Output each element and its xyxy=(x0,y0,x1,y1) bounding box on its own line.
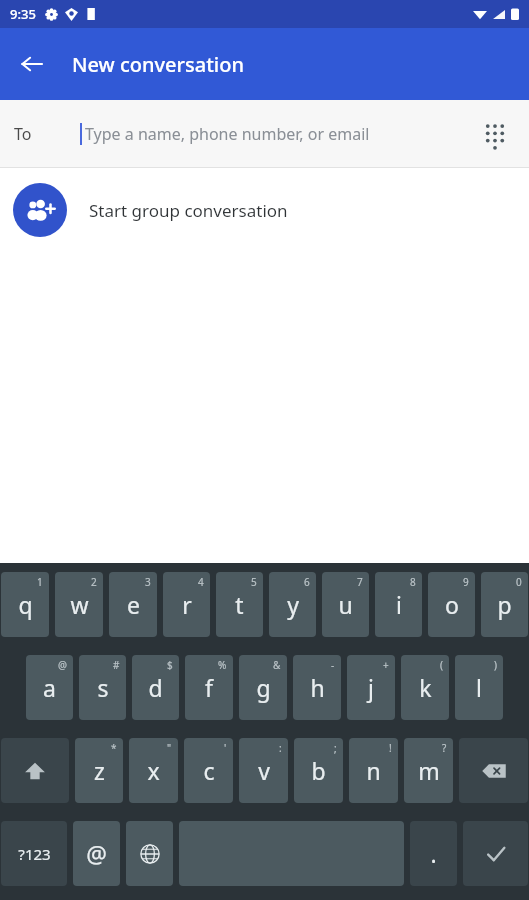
staticText: q xyxy=(18,589,33,620)
staticText: @ xyxy=(86,838,107,869)
button[interactable]: u xyxy=(322,572,369,637)
staticText: 3 xyxy=(145,575,151,589)
staticText: $ xyxy=(167,658,173,672)
button[interactable]: r xyxy=(163,572,210,637)
staticText: 5 xyxy=(251,575,257,589)
staticText: 9:35 xyxy=(10,5,36,23)
button[interactable]: To xyxy=(0,100,529,167)
button[interactable]: o xyxy=(428,572,475,637)
staticText: f xyxy=(205,672,213,703)
button[interactable]: . xyxy=(410,821,457,886)
button[interactable]: w xyxy=(55,572,103,637)
staticText: ?123 xyxy=(18,844,51,864)
button[interactable]: p xyxy=(481,572,528,637)
staticText: " xyxy=(167,741,172,755)
staticText: ! xyxy=(389,741,392,755)
button[interactable]: e xyxy=(109,572,157,637)
staticText: a xyxy=(43,672,56,703)
staticText: 9 xyxy=(463,575,469,589)
staticText: 7 xyxy=(357,575,363,589)
staticText: b xyxy=(311,755,326,786)
button[interactable]: i xyxy=(375,572,422,637)
button[interactable]: k xyxy=(401,655,449,720)
staticText: s xyxy=(97,672,109,703)
button[interactable]: Shift xyxy=(1,738,69,803)
staticText: ( xyxy=(440,658,443,672)
staticText: v xyxy=(258,755,270,786)
staticText: Start group conversation xyxy=(89,199,288,222)
button[interactable]: Backspace xyxy=(459,738,528,803)
button[interactable]: g xyxy=(239,655,287,720)
staticText: h xyxy=(310,672,325,703)
staticText: n xyxy=(366,755,381,786)
staticText: x xyxy=(147,755,160,786)
staticText: : xyxy=(279,741,282,755)
staticText: r xyxy=(182,589,192,620)
staticText: j xyxy=(368,672,374,703)
staticText: * xyxy=(111,741,117,755)
staticText: d xyxy=(148,672,163,703)
button[interactable]: Dialpad xyxy=(475,114,515,154)
button[interactable]: Start group conversation xyxy=(0,168,529,252)
staticText: w xyxy=(70,589,89,620)
staticText: ) xyxy=(494,658,497,672)
staticText: c xyxy=(203,755,215,786)
button[interactable]: d xyxy=(132,655,179,720)
button[interactable]: b xyxy=(294,738,343,803)
staticText: y xyxy=(287,589,299,620)
staticText: k xyxy=(419,672,432,703)
staticText: 4 xyxy=(198,575,204,589)
staticText: 8 xyxy=(410,575,416,589)
button[interactable]: y xyxy=(269,572,316,637)
staticText: & xyxy=(273,658,281,672)
button[interactable]: z xyxy=(75,738,123,803)
staticText: o xyxy=(445,589,459,620)
staticText: 1 xyxy=(37,575,43,589)
button[interactable]: c xyxy=(184,738,233,803)
staticText: t xyxy=(235,589,244,620)
staticText: . xyxy=(430,838,437,869)
button[interactable]: q xyxy=(1,572,49,637)
button[interactable]: n xyxy=(349,738,398,803)
staticText: m xyxy=(418,755,440,786)
staticText: z xyxy=(94,755,105,786)
button[interactable]: f xyxy=(185,655,233,720)
button[interactable]: Back xyxy=(8,40,56,88)
staticText: l xyxy=(476,672,482,703)
button[interactable]: s xyxy=(79,655,126,720)
staticText: ' xyxy=(224,741,227,755)
button[interactable]: m xyxy=(404,738,453,803)
staticText: - xyxy=(331,658,335,672)
staticText: ? xyxy=(442,741,447,755)
button[interactable]: j xyxy=(347,655,395,720)
button[interactable]: v xyxy=(239,738,288,803)
staticText: ; xyxy=(334,741,337,755)
staticText: + xyxy=(383,658,389,672)
button[interactable]: l xyxy=(455,655,503,720)
staticText: @ xyxy=(58,658,67,672)
staticText: e xyxy=(127,589,140,620)
staticText: i xyxy=(396,589,402,620)
button[interactable]: t xyxy=(216,572,263,637)
staticText: Type a name, phone number, or email xyxy=(85,123,370,145)
staticText: # xyxy=(113,658,120,672)
staticText: g xyxy=(256,672,271,703)
staticText: 6 xyxy=(304,575,310,589)
staticText: % xyxy=(218,658,227,672)
button[interactable]: Change language xyxy=(126,821,173,886)
staticText: p xyxy=(497,589,512,620)
button[interactable]: a xyxy=(26,655,73,720)
button[interactable]: @ xyxy=(73,821,120,886)
staticText: 2 xyxy=(91,575,97,589)
button[interactable]: x xyxy=(129,738,178,803)
staticText: To xyxy=(14,123,32,145)
button[interactable]: ?123 xyxy=(1,821,67,886)
staticText: 0 xyxy=(516,575,522,589)
button[interactable]: Enter xyxy=(463,821,528,886)
button[interactable]: h xyxy=(293,655,341,720)
staticText: u xyxy=(338,589,353,620)
staticText: New conversation xyxy=(72,51,244,78)
